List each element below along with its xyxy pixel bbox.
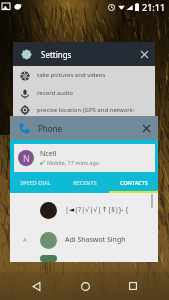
button[interactable]: Back: [24, 274, 48, 298]
staticText: Mobile, 17 mins ago: [47, 159, 100, 166]
button[interactable]: Close phone: [136, 118, 156, 138]
staticText: 21:11: [142, 1, 166, 13]
button[interactable]: Close settings: [134, 44, 154, 64]
staticText: Phone: [38, 123, 63, 134]
button[interactable]: Recent apps: [121, 274, 145, 298]
button[interactable]: [10, 255, 158, 262]
staticText: record audio: [37, 89, 73, 97]
staticText: A: [23, 236, 27, 244]
button[interactable]: Home: [73, 274, 97, 298]
button[interactable]: Phone: [10, 116, 158, 140]
staticText: Adi Shaswot Singh: [65, 235, 126, 245]
button[interactable]: take pictures and videos: [13, 66, 155, 84]
staticText: precise location (GPS and network-: [37, 106, 135, 114]
staticText: |◄|?|√|√|↑|§|}- {: [65, 205, 129, 215]
staticText: take pictures and videos: [37, 71, 106, 79]
staticText: SPEED DIAL: [20, 179, 51, 186]
staticText: N: [23, 152, 30, 164]
button[interactable]: precise location (GPS and network-: [13, 102, 155, 117]
button[interactable]: CONTACTS: [109, 177, 158, 193]
staticText: Ncell: [40, 149, 57, 159]
button[interactable]: SPEED DIAL: [10, 177, 60, 193]
button[interactable]: A: [10, 225, 158, 255]
staticText: Settings: [41, 49, 72, 60]
button[interactable]: N: [14, 144, 155, 172]
button[interactable]: Settings: [13, 42, 155, 66]
staticText: RECENTS: [73, 179, 97, 186]
button[interactable]: |◄|?|√|√|↑|§|}- {: [10, 195, 158, 225]
button[interactable]: RECENTS: [60, 177, 109, 193]
button[interactable]: record audio: [13, 84, 155, 102]
staticText: CONTACTS: [120, 179, 148, 186]
